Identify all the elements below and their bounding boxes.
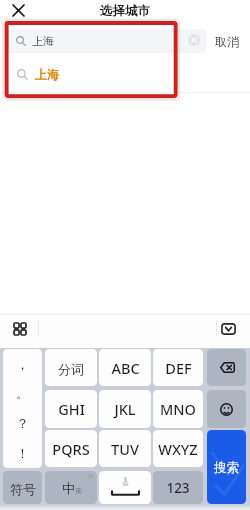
- button[interactable]: Clear text: [188, 34, 200, 46]
- staticText: 上海: [35, 67, 59, 82]
- button[interactable]: 123: [153, 471, 203, 504]
- staticText: GHI: [58, 399, 85, 419]
- staticText: MNO: [160, 399, 196, 419]
- staticText: 123: [166, 479, 190, 497]
- staticText: 上海: [32, 34, 54, 48]
- staticText: 选择城市: [100, 3, 150, 19]
- staticText: DEF: [165, 358, 192, 378]
- staticText: 符号: [10, 481, 36, 497]
- button[interactable]: JKL: [99, 390, 151, 428]
- staticText: TUV: [111, 439, 139, 459]
- button[interactable]: 搜索: [207, 430, 246, 504]
- button[interactable]: 分词: [45, 349, 97, 386]
- button[interactable]: MNO: [153, 390, 203, 428]
- button[interactable]: Keyboard layout: [11, 320, 28, 337]
- button[interactable]: WXYZ: [153, 430, 203, 467]
- button[interactable]: GHI: [45, 390, 97, 428]
- staticText: 中: [62, 480, 75, 496]
- button[interactable]: DEF: [153, 349, 203, 386]
- staticText: 。: [16, 385, 29, 401]
- button[interactable]: ABC: [99, 349, 151, 386]
- button[interactable]: Close: [8, 0, 29, 21]
- staticText: 分词: [58, 361, 84, 377]
- staticText: 取消: [215, 34, 239, 49]
- staticText: ，: [16, 356, 29, 372]
- button[interactable]: 中: [45, 471, 97, 504]
- staticText: PQRS: [52, 439, 90, 459]
- button[interactable]: 上海: [6, 29, 206, 53]
- staticText: ABC: [111, 358, 140, 378]
- button[interactable]: PQRS: [45, 430, 97, 467]
- button[interactable]: Space: [99, 471, 151, 504]
- button[interactable]: 上海: [0, 56, 250, 92]
- staticText: WXYZ: [158, 439, 198, 459]
- staticText: 搜索: [214, 460, 239, 476]
- staticText: ？: [16, 415, 29, 431]
- button[interactable]: 符号: [3, 471, 42, 504]
- staticText: JKL: [114, 399, 136, 419]
- button[interactable]: 取消: [211, 31, 243, 51]
- button[interactable]: TUV: [99, 430, 151, 467]
- button[interactable]: Delete: [207, 349, 246, 386]
- staticText: ！: [16, 445, 29, 461]
- button[interactable]: Hide keyboard: [220, 322, 236, 336]
- staticText: 英: [75, 487, 82, 495]
- button[interactable]: Emoji: [207, 390, 246, 428]
- button[interactable]: ，: [3, 349, 42, 468]
